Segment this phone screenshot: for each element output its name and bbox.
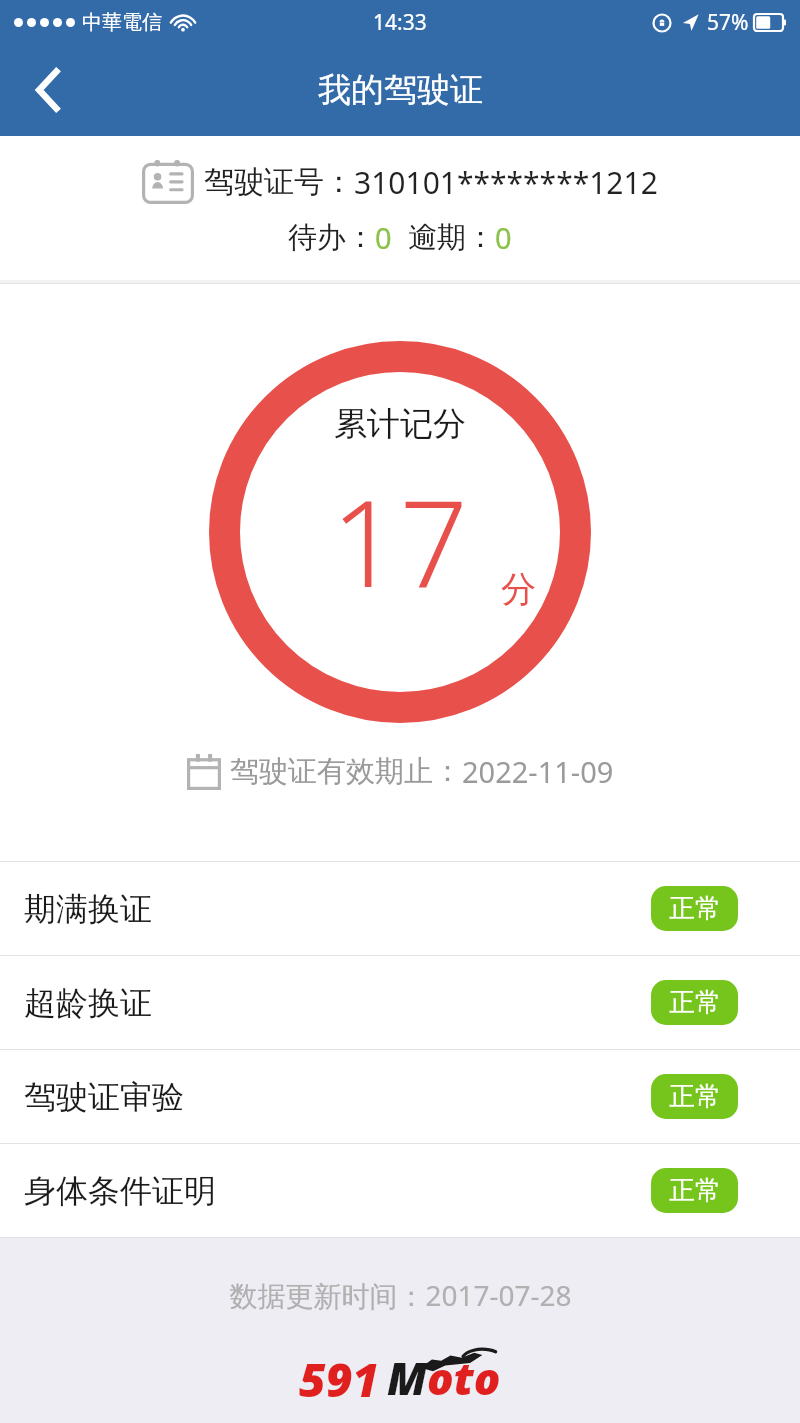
staticText: 待办： — [288, 219, 375, 256]
staticText: 17 — [331, 459, 469, 622]
staticText: 2022-11-09 — [462, 752, 614, 791]
staticText: 正常 — [669, 1174, 721, 1207]
button[interactable]: Back — [0, 44, 96, 136]
staticText: 身体条件证明 — [24, 1171, 216, 1211]
button[interactable]: 超龄换证 — [0, 956, 800, 1049]
staticText: 0 — [375, 218, 392, 257]
staticText: 数据更新时间：2017-07-28 — [229, 1276, 572, 1314]
staticText: 0 — [495, 218, 512, 257]
staticText: 591 — [299, 1348, 380, 1405]
staticText: 驾驶证号： — [204, 163, 354, 201]
staticText: 分 — [501, 567, 536, 611]
staticText: 逾期： — [408, 219, 495, 256]
staticText: 期满换证 — [24, 889, 152, 929]
staticText: 正常 — [669, 1080, 721, 1113]
staticText: 正常 — [669, 986, 721, 1019]
staticText: 累计记分 — [334, 403, 466, 445]
staticText: M — [387, 1348, 427, 1405]
button[interactable]: 身体条件证明 — [0, 1144, 800, 1237]
staticText: 驾驶证审验 — [24, 1077, 184, 1117]
staticText: 57% — [707, 8, 749, 37]
staticText: 正常 — [669, 892, 721, 925]
staticText: 我的驾驶证 — [318, 69, 483, 111]
staticText: 驾驶证有效期止： — [230, 753, 462, 790]
staticText: oto — [427, 1348, 501, 1405]
staticText: 超龄换证 — [24, 983, 152, 1023]
button[interactable]: 驾驶证审验 — [0, 1050, 800, 1143]
button[interactable]: 期满换证 — [0, 862, 800, 955]
staticText: 14:33 — [373, 8, 427, 37]
staticText: 中華電信 — [82, 10, 162, 35]
staticText: 310101********1212 — [354, 162, 658, 203]
